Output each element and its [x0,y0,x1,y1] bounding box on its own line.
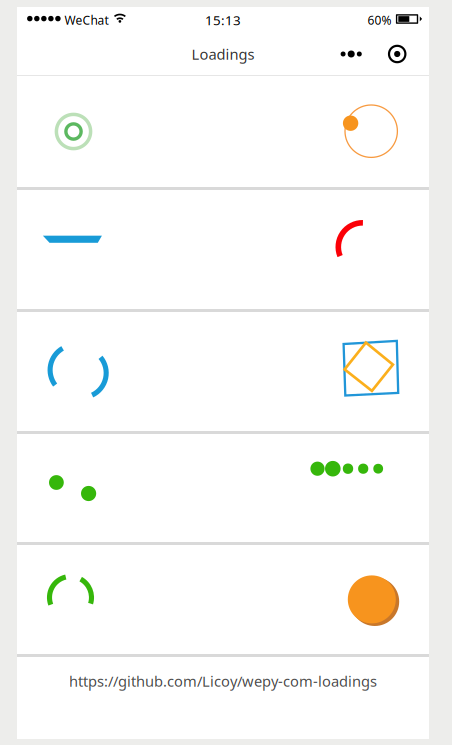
button[interactable]: Close [384,41,410,67]
staticText: WeChat [64,12,108,28]
staticText: Loadings [191,44,254,64]
staticText: 60% [367,12,391,28]
button[interactable]: https://github.com/Licoy/wepy-com-loadin… [17,657,429,705]
staticText: 15:13 [205,11,241,29]
button[interactable]: More [340,39,370,69]
staticText: https://github.com/Licoy/wepy-com-loadin… [69,671,377,691]
